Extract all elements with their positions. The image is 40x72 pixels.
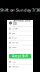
staticText: 9:00 AM - 5:00 PM: [13, 26, 23, 27]
staticText: Shift on Sunday 7/30: [0, 7, 40, 13]
staticText: Accept Shift: [12, 54, 28, 58]
staticText: Notes: [12, 61, 16, 63]
staticText: Pay rate: [12, 42, 18, 44]
staticText: Team: [12, 47, 16, 48]
button[interactable]: Accept Shift: [9, 54, 31, 58]
staticText: Sunday, July 30: [13, 19, 30, 26]
staticText: Manager: [12, 66, 19, 68]
staticText: Role: [12, 32, 15, 34]
staticText: Location: [12, 28, 18, 30]
staticText: Break: [12, 37, 17, 39]
